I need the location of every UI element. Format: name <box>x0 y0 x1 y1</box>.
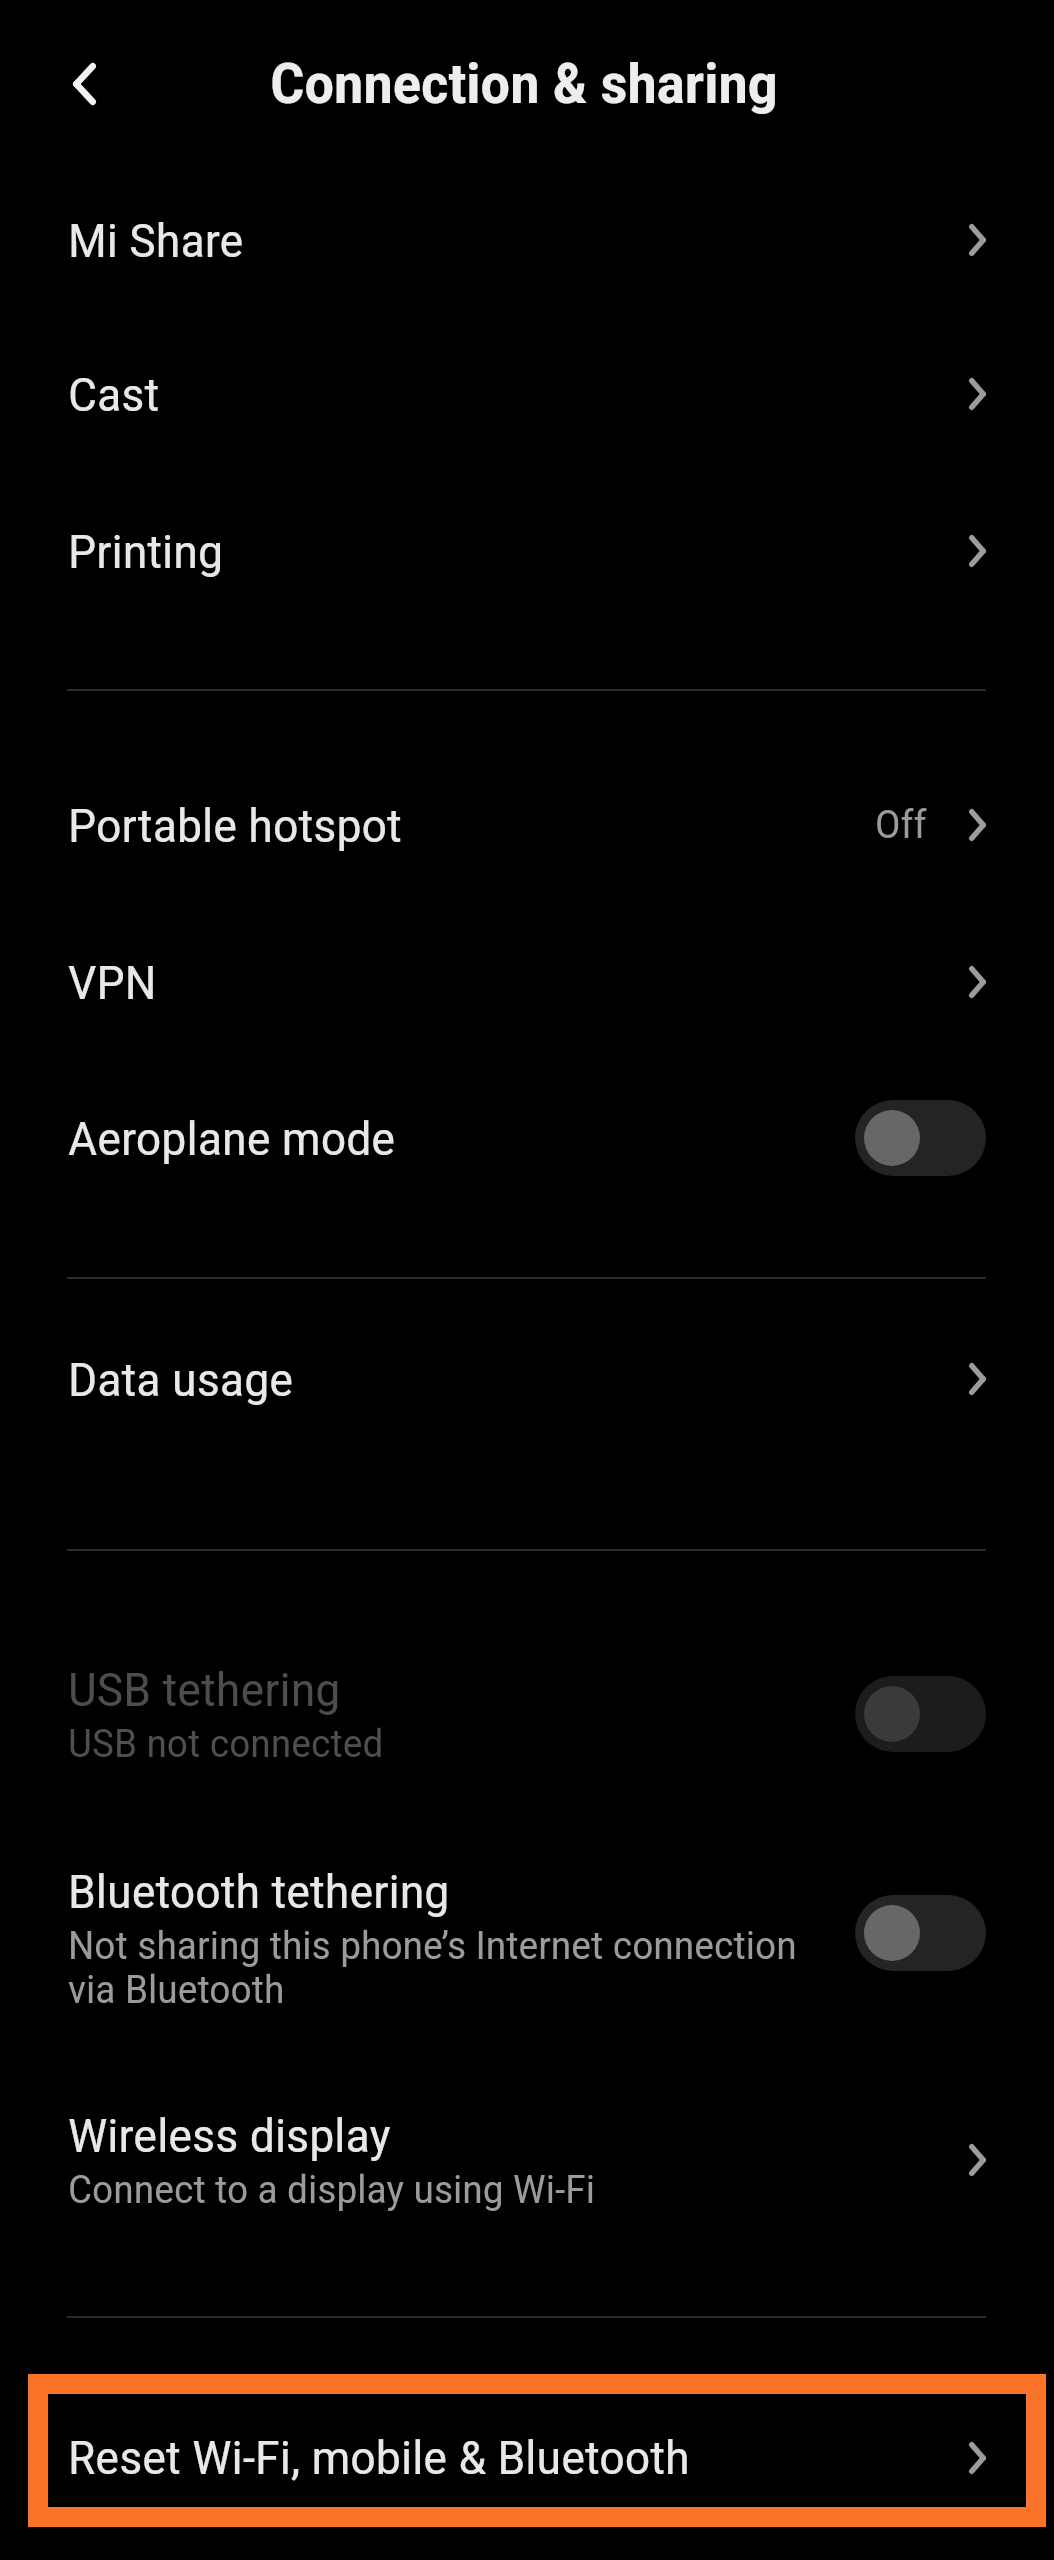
button[interactable]: Wireless display <box>0 2065 1054 2255</box>
button[interactable]: Mi Share <box>0 162 1054 318</box>
staticText: Portable hotspot <box>68 798 402 853</box>
button[interactable]: Bluetooth tethering switch <box>855 1895 986 1971</box>
button[interactable]: Data usage <box>0 1301 1054 1457</box>
staticText: VPN <box>68 955 157 1010</box>
button[interactable]: Reset Wi-Fi, mobile & Bluetooth <box>28 2374 1046 2527</box>
staticText: USB tethering <box>68 1662 341 1717</box>
staticText: Cast <box>68 367 160 422</box>
button[interactable]: Cast <box>0 316 1054 472</box>
staticText: Data usage <box>68 1352 294 1407</box>
button[interactable]: Bluetooth tethering <box>0 1818 1054 2058</box>
staticText: Connect to a display using Wi-Fi <box>68 2167 596 2213</box>
button[interactable]: Aeroplane mode switch <box>855 1100 986 1176</box>
staticText: Mi Share <box>68 213 244 268</box>
staticText: Printing <box>68 524 224 579</box>
staticText: Not sharing this phone’s Internet connec… <box>68 1923 808 2012</box>
staticText: Reset Wi-Fi, mobile & Bluetooth <box>68 2430 969 2485</box>
staticText: Aeroplane mode <box>68 1111 396 1166</box>
button[interactable]: USB tethering switch <box>855 1676 986 1752</box>
staticText: Wireless display <box>68 2108 391 2163</box>
button[interactable]: Back <box>40 40 128 128</box>
button[interactable]: Portable hotspot <box>0 747 1054 903</box>
button[interactable]: USB tethering <box>0 1619 1054 1809</box>
button[interactable]: Printing <box>0 473 1054 629</box>
staticText: Off <box>875 802 927 848</box>
button[interactable]: VPN <box>0 904 1054 1060</box>
staticText: Bluetooth tethering <box>68 1864 450 1919</box>
button[interactable]: Aeroplane mode <box>0 1060 1054 1216</box>
staticText: USB not connected <box>68 1721 384 1767</box>
staticText: Connection & sharing <box>270 52 778 116</box>
